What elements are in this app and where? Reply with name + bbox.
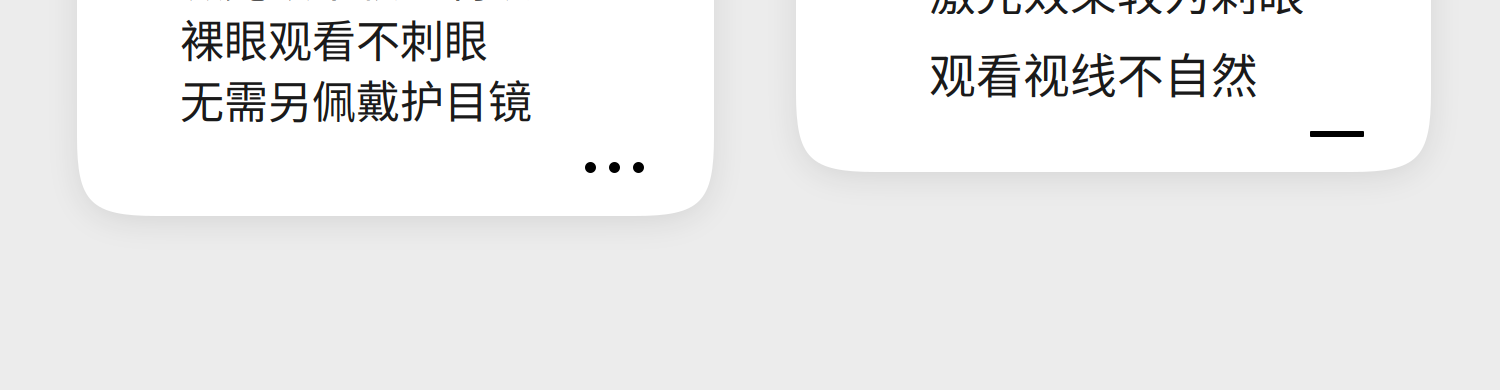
staticText: 观看视线不自然 bbox=[929, 39, 1258, 106]
button[interactable]: Show more bbox=[557, 128, 672, 207]
staticText: 无需另佩戴护目镜 bbox=[180, 67, 532, 131]
staticText: 裸眼观看不刺眼 bbox=[180, 6, 488, 70]
staticText: 激光效果较为刺眼 bbox=[929, 0, 1305, 24]
button[interactable]: Collapse bbox=[1280, 94, 1394, 174]
staticText: 激光效果较为刺眼 bbox=[180, 0, 532, 9]
